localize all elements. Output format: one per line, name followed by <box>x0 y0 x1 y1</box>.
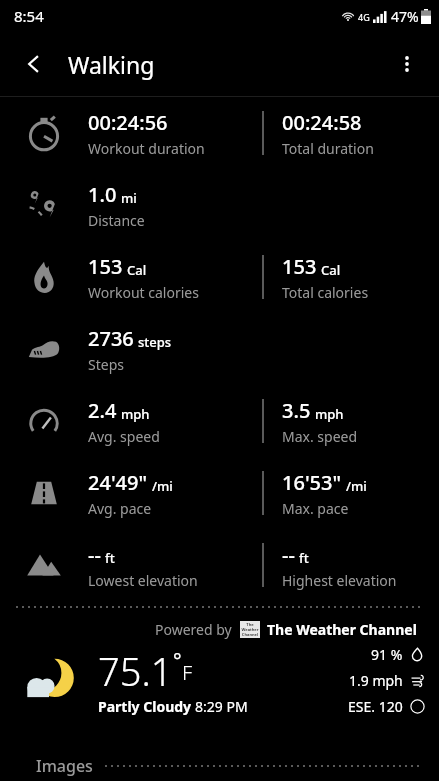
staticText: 47% <box>391 7 419 26</box>
staticText: 75.1 <box>98 645 173 697</box>
staticText: 153 <box>88 253 123 280</box>
button[interactable]: 00:24:56 <box>0 97 439 169</box>
staticText: Max. speed <box>282 427 358 446</box>
button[interactable]: More options <box>385 42 429 86</box>
button[interactable]: 24'49" <box>0 457 439 529</box>
staticText: 4G <box>358 11 370 23</box>
staticText: steps <box>138 333 172 351</box>
staticText: Powered by <box>155 620 232 639</box>
staticText: 91 % <box>371 645 403 664</box>
button[interactable]: Back <box>12 42 56 86</box>
staticText: Partly Cloudy <box>98 697 195 716</box>
staticText: -- <box>88 541 101 568</box>
staticText: ESE. 120 <box>348 697 403 716</box>
staticText: 2736 <box>88 325 134 352</box>
staticText: -- <box>282 541 295 568</box>
staticText: 153 <box>282 253 317 280</box>
staticText: 1.0 <box>88 181 117 208</box>
staticText: Cal <box>321 261 341 279</box>
staticText: ft <box>299 549 309 567</box>
staticText: Distance <box>88 211 145 230</box>
staticText: /mi <box>346 477 367 495</box>
staticText: ° <box>173 647 182 674</box>
staticText: Workout calories <box>88 283 199 302</box>
button[interactable]: 2.4 <box>0 385 439 457</box>
button[interactable]: 153 <box>0 241 439 313</box>
button[interactable]: Powered by <box>0 620 417 639</box>
staticText: 8:54 <box>14 6 44 26</box>
staticText: mph <box>315 405 344 423</box>
staticText: Max. pace <box>282 499 349 518</box>
staticText: 24'49" <box>88 469 148 496</box>
staticText: F <box>182 659 193 686</box>
staticText: Workout duration <box>88 139 205 158</box>
staticText: 2.4 <box>88 397 117 424</box>
staticText: The Weather Channel <box>241 622 259 637</box>
staticText: 3.5 <box>282 397 311 424</box>
staticText: 00:24:58 <box>282 109 362 136</box>
button[interactable]: -- <box>0 529 439 601</box>
staticText: Cal <box>127 261 147 279</box>
staticText: Walking <box>68 49 155 80</box>
staticText: Images <box>36 755 93 777</box>
staticText: Total duration <box>282 139 374 158</box>
staticText: 16'53" <box>282 469 342 496</box>
button[interactable]: 1.0 <box>0 169 439 241</box>
staticText: mph <box>121 405 150 423</box>
staticText: Avg. speed <box>88 427 160 446</box>
button[interactable]: 75.1 <box>0 645 439 716</box>
staticText: Lowest elevation <box>88 571 198 590</box>
staticText: The Weather Channel <box>267 620 417 639</box>
staticText: /mi <box>152 477 173 495</box>
staticText: ft <box>105 549 115 567</box>
staticText: Highest elevation <box>282 571 397 590</box>
button[interactable]: 2736 <box>0 313 439 385</box>
staticText: 8:29 PM <box>195 697 248 716</box>
staticText: 1.9 mph <box>349 671 403 690</box>
staticText: Total calories <box>282 283 369 302</box>
staticText: mi <box>121 189 137 207</box>
staticText: Steps <box>88 355 124 374</box>
staticText: Avg. pace <box>88 499 152 518</box>
staticText: 00:24:56 <box>88 109 168 136</box>
